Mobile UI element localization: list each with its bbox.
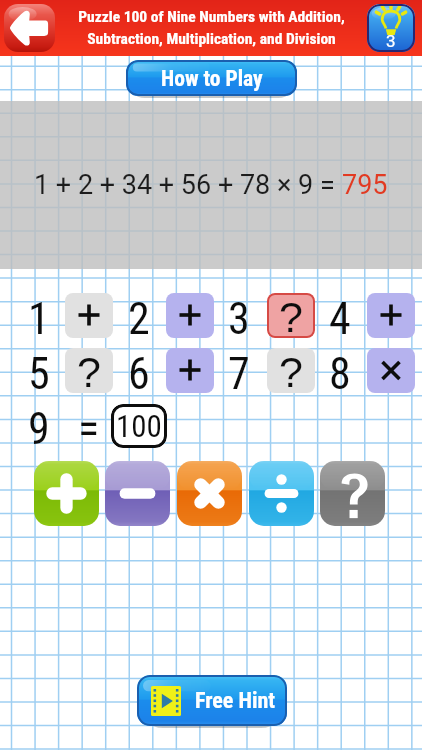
staticText: 5 — [28, 348, 50, 393]
button[interactable]: Back — [4, 4, 55, 52]
button[interactable]: + — [367, 293, 415, 338]
button[interactable]: Division — [249, 461, 314, 526]
button[interactable]: + — [65, 293, 113, 338]
button[interactable]: Empty operator slot — [65, 348, 113, 393]
staticText: 100 — [116, 408, 162, 444]
button[interactable]: 100 — [111, 404, 167, 448]
staticText: 6 — [128, 348, 150, 393]
button[interactable]: Addition — [34, 461, 99, 526]
staticText: 3 — [386, 31, 396, 51]
button[interactable]: Hints: 3 remaining — [367, 4, 415, 52]
button[interactable]: Subtraction — [105, 461, 170, 526]
staticText: 3 — [228, 293, 250, 338]
staticText: Puzzle 100 of Nine Numbers with Addition… — [78, 8, 345, 47]
staticText: 7 — [228, 348, 250, 393]
button[interactable]: Empty operator slot — [267, 348, 315, 393]
staticText: ? — [279, 293, 303, 338]
staticText: 1 + 2 + 34 + 56 + 78 × 9 = — [34, 169, 342, 201]
staticText: ? — [279, 348, 303, 393]
staticText: ? — [77, 348, 101, 393]
button[interactable]: How to Play — [126, 60, 297, 96]
staticText: 4 — [329, 293, 351, 338]
button[interactable]: Free Hint — [137, 675, 287, 726]
staticText: 2 — [128, 293, 150, 338]
staticText: 8 — [329, 348, 351, 393]
staticText: How to Play — [161, 66, 263, 91]
button[interactable]: + — [166, 293, 214, 338]
staticText: = — [78, 403, 100, 448]
staticText: 795 — [342, 169, 388, 201]
button[interactable]: + — [166, 348, 214, 393]
button[interactable]: × — [367, 348, 415, 393]
button[interactable]: Empty operator slot — [267, 293, 315, 338]
button[interactable]: Unknown — [320, 461, 385, 526]
staticText: 1 — [28, 293, 50, 338]
staticText: 9 — [28, 403, 50, 448]
button[interactable]: Multiplication — [177, 461, 242, 526]
staticText: Free Hint — [195, 688, 276, 714]
